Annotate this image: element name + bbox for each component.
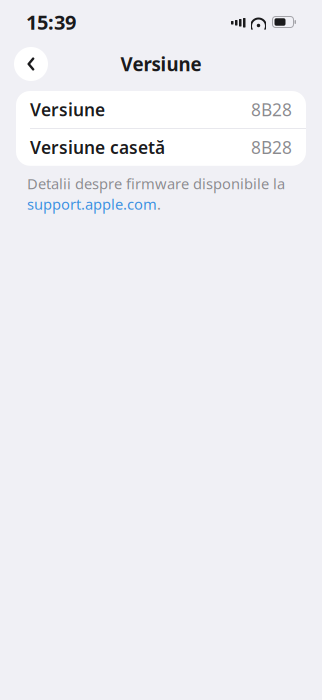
button[interactable]: Versiune xyxy=(16,91,306,128)
staticText: 8B28 xyxy=(251,98,292,121)
staticText: Versiune xyxy=(120,52,201,76)
staticText: 8B28 xyxy=(251,136,292,159)
staticText: support.apple.com xyxy=(27,194,157,214)
staticText: . xyxy=(157,194,161,214)
button[interactable]: Back xyxy=(14,47,48,81)
staticText: Versiune xyxy=(30,98,105,121)
staticText: Versiune casetă xyxy=(30,136,165,159)
staticText: Detalii despre firmware disponibile la xyxy=(27,174,285,193)
button[interactable]: support.apple.com xyxy=(27,194,161,214)
button[interactable]: Versiune casetă xyxy=(16,129,306,166)
staticText: 15:39 xyxy=(26,9,76,35)
